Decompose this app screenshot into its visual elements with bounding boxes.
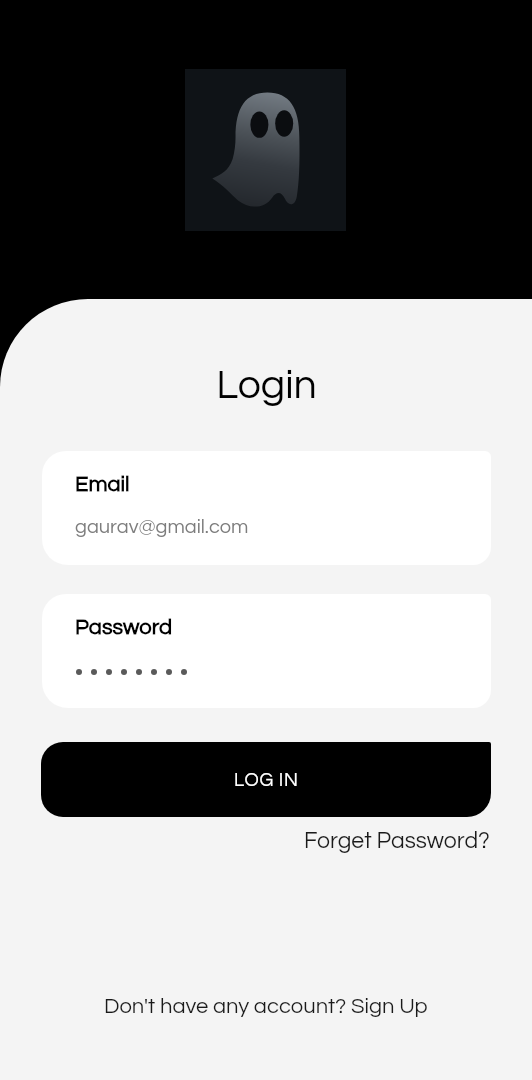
staticText: gaurav@gmail.com bbox=[75, 517, 249, 538]
other: App logo bbox=[185, 69, 346, 231]
staticText: Forget Password? bbox=[304, 829, 490, 853]
button[interactable]: Email bbox=[42, 451, 491, 565]
staticText: Password bbox=[75, 616, 173, 639]
staticText: Login bbox=[216, 364, 317, 406]
staticText: LOG IN bbox=[234, 770, 299, 790]
button[interactable]: Forget Password? bbox=[304, 829, 490, 853]
button[interactable]: Don't have any account? Sign Up bbox=[104, 995, 428, 1018]
button[interactable]: Password bbox=[42, 594, 491, 708]
staticText: Don't have any account? Sign Up bbox=[104, 995, 428, 1018]
staticText: Email bbox=[75, 473, 130, 496]
button[interactable]: LOG IN bbox=[41, 742, 491, 817]
